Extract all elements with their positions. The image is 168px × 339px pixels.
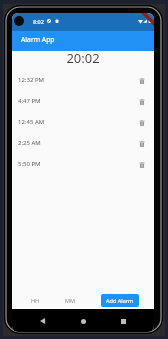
button[interactable]: Delete alarm — [135, 158, 149, 172]
staticText: 20:02 — [12, 49, 154, 67]
staticText: 4:47 PM — [18, 97, 41, 105]
button[interactable]: Delete alarm — [135, 137, 149, 151]
staticText: HH — [31, 297, 40, 304]
staticText: MM — [65, 297, 75, 304]
button[interactable]: MM — [49, 293, 91, 307]
staticText: 5:50 PM — [18, 160, 41, 168]
button[interactable]: Delete alarm — [135, 116, 149, 130]
staticText: 12:45 AM — [18, 118, 45, 126]
button[interactable]: HH — [14, 293, 56, 307]
button[interactable]: 2:25 AM — [12, 132, 154, 153]
staticText: 8:02 — [33, 18, 44, 25]
button[interactable]: Home — [74, 312, 92, 330]
button[interactable]: 4:47 PM — [12, 90, 154, 111]
staticText: Alarm App — [21, 35, 55, 44]
button[interactable]: 12:45 AM — [12, 111, 154, 132]
button[interactable]: 12:32 PM — [12, 69, 154, 90]
button[interactable]: Back — [34, 312, 52, 330]
button[interactable]: Delete alarm — [135, 74, 149, 88]
button[interactable]: Delete alarm — [135, 95, 149, 109]
button[interactable]: Recent apps — [114, 312, 132, 330]
button[interactable]: Add Alarm — [101, 294, 139, 307]
button[interactable]: 5:50 PM — [12, 153, 154, 174]
staticText: Add Alarm — [106, 297, 134, 304]
staticText: 12:32 PM — [18, 76, 44, 84]
staticText: 2:25 AM — [18, 139, 41, 147]
